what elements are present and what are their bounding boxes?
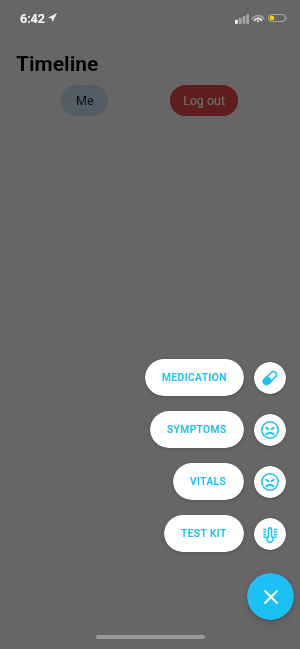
button[interactable]: Log out <box>170 85 238 116</box>
button[interactable]: VITALS <box>254 466 286 498</box>
staticText: TEST KIT <box>181 528 227 540</box>
button[interactable]: SYMPTOMS <box>150 411 244 448</box>
button[interactable]: TEST KIT <box>164 515 244 552</box>
staticText: Timeline <box>16 52 99 77</box>
button[interactable]: MEDICATION <box>254 362 286 394</box>
staticText: SYMPTOMS <box>167 424 227 436</box>
button[interactable]: MEDICATION <box>145 359 244 396</box>
staticText: Me <box>76 93 94 108</box>
staticText: VITALS <box>190 476 227 488</box>
staticText: Log out <box>183 93 226 108</box>
button[interactable]: TEST KIT <box>254 518 286 550</box>
button[interactable]: VITALS <box>173 463 244 500</box>
button[interactable]: Me <box>61 85 108 116</box>
staticText: MEDICATION <box>162 372 227 384</box>
button[interactable]: Close menu <box>247 573 294 620</box>
staticText: 6:42 <box>20 11 45 26</box>
button[interactable] <box>0 0 300 649</box>
button[interactable]: SYMPTOMS <box>254 414 286 446</box>
